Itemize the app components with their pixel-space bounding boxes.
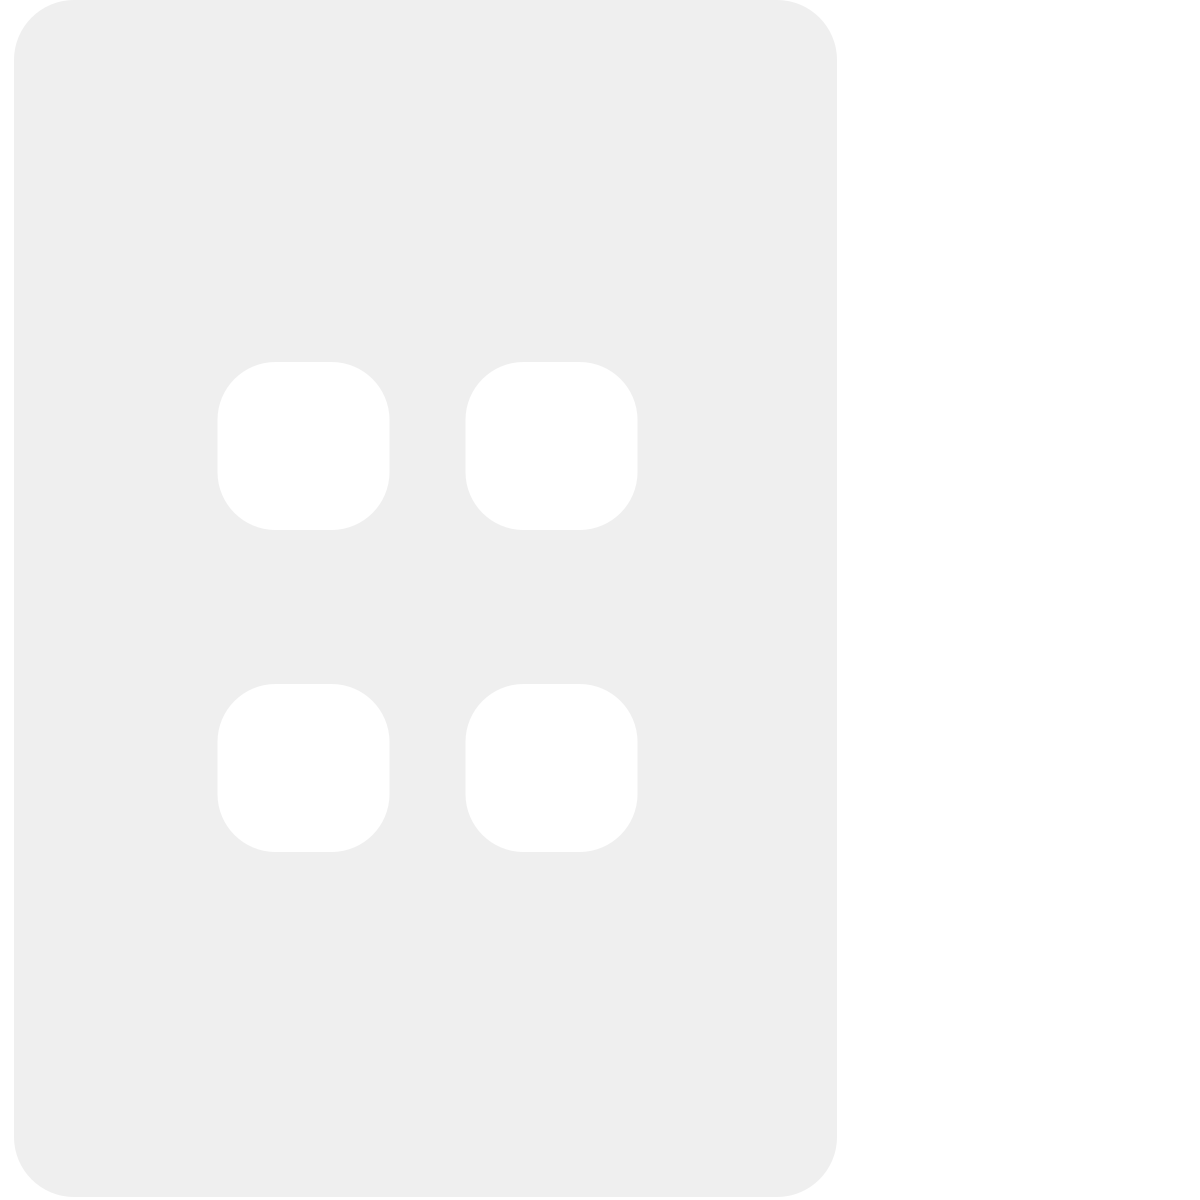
button[interactable]: Third card bbox=[217, 684, 389, 852]
button[interactable]: Fourth card bbox=[465, 684, 637, 852]
button[interactable]: Second card bbox=[465, 362, 637, 530]
button[interactable]: First card bbox=[217, 362, 389, 530]
